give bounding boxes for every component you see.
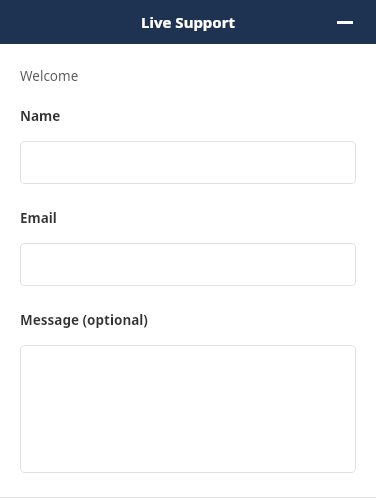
staticText: Name xyxy=(20,107,61,125)
staticText: Live Support xyxy=(0,12,376,32)
button[interactable]: Message input xyxy=(20,345,356,473)
staticText: Message (optional) xyxy=(20,311,148,329)
button[interactable]: Minimize xyxy=(333,10,357,34)
button[interactable]: Name input xyxy=(20,141,356,184)
staticText: Email xyxy=(20,209,57,227)
staticText: Welcome xyxy=(20,67,79,85)
button[interactable]: Email input xyxy=(20,243,356,286)
